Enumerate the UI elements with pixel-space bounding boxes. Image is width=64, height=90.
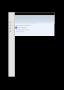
button[interactable]: App window (0, 0, 64, 90)
